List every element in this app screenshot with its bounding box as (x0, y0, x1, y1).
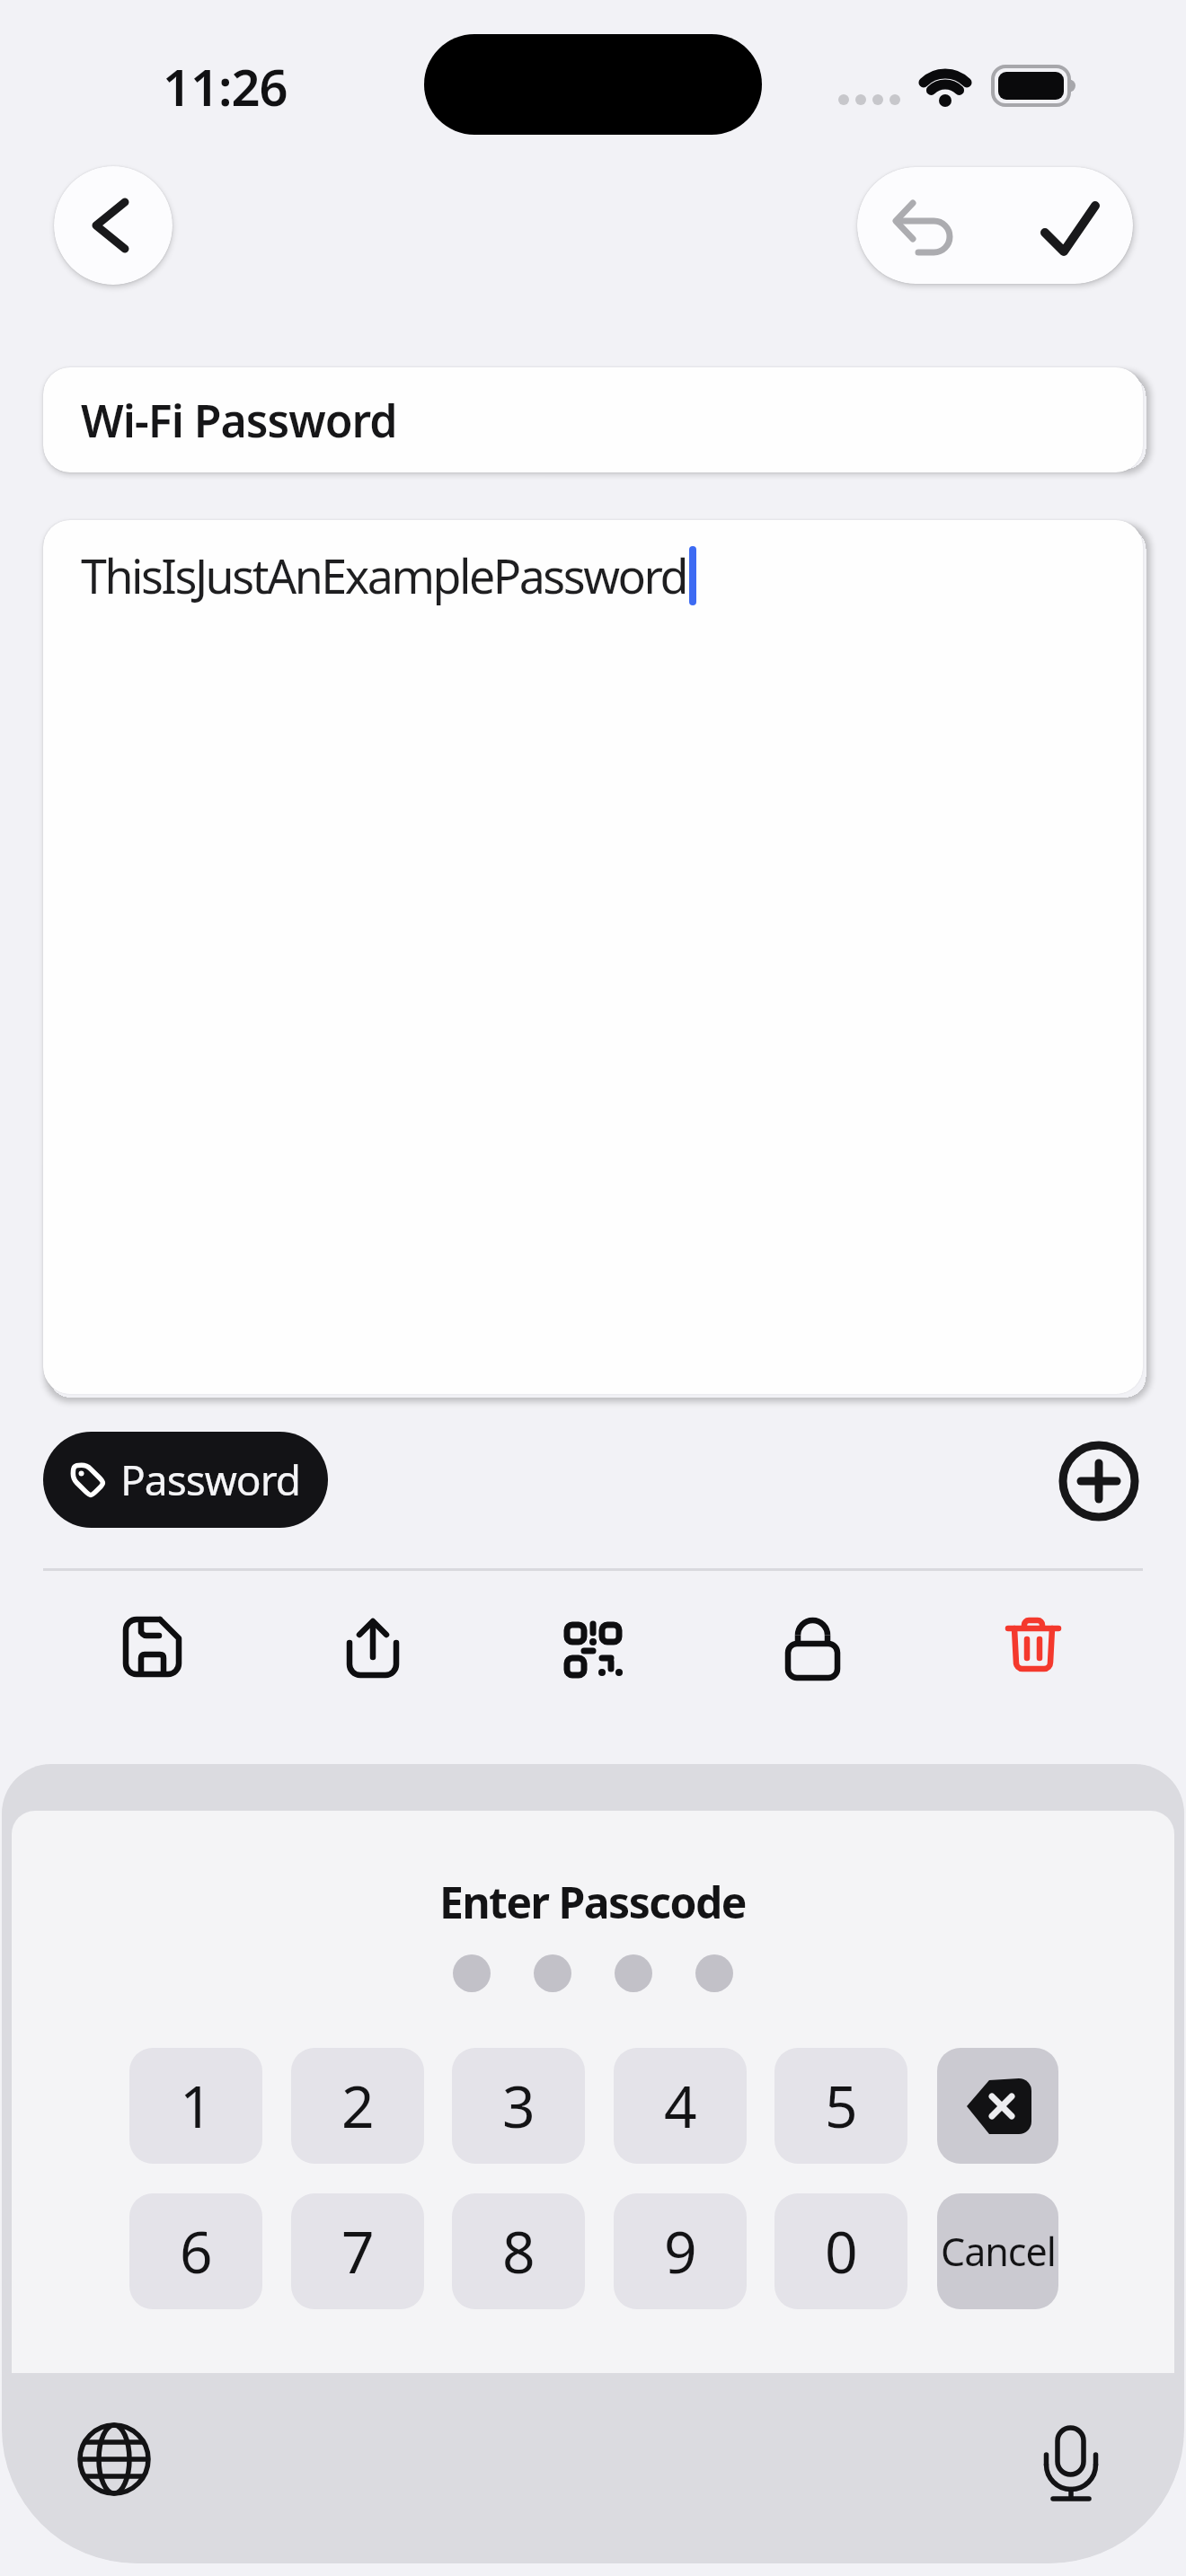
staticText: Password (120, 1451, 301, 1508)
button[interactable]: 2 (291, 2048, 424, 2164)
button[interactable]: 7 (291, 2193, 424, 2309)
staticText: 7 (341, 2212, 375, 2290)
staticText: 3 (502, 2067, 535, 2145)
button[interactable] (995, 167, 1133, 284)
button[interactable]: 4 (614, 2048, 747, 2164)
button[interactable]: 9 (614, 2193, 747, 2309)
staticText: 11:26 (163, 52, 288, 120)
button[interactable] (712, 1608, 949, 1690)
button[interactable] (54, 166, 173, 285)
button[interactable]: ThisIsJustAnExamplePassword (43, 520, 1143, 1394)
button[interactable] (237, 1608, 474, 1690)
staticText: 2 (341, 2067, 375, 2145)
button[interactable] (474, 1608, 712, 1690)
button[interactable]: 5 (774, 2048, 907, 2164)
button[interactable]: 3 (452, 2048, 585, 2164)
staticText: Enter Passcode (439, 1873, 747, 1930)
button[interactable] (1059, 1442, 1138, 1521)
staticText: 1 (180, 2067, 213, 2145)
staticText: 8 (502, 2212, 535, 2290)
button[interactable] (857, 167, 995, 284)
button[interactable]: 0 (774, 2193, 907, 2309)
button[interactable]: 6 (129, 2193, 262, 2309)
button[interactable] (949, 1608, 1186, 1690)
button[interactable] (937, 2048, 1058, 2164)
staticText: 9 (664, 2212, 697, 2290)
staticText: ThisIsJustAnExamplePassword (81, 543, 686, 607)
staticText: 6 (180, 2212, 213, 2290)
button[interactable] (0, 1608, 237, 1690)
button[interactable]: 8 (452, 2193, 585, 2309)
button[interactable]: Password (43, 1432, 328, 1528)
button[interactable]: Cancel (937, 2193, 1058, 2309)
staticText: 4 (664, 2067, 697, 2145)
staticText: Wi-Fi Password (81, 390, 397, 451)
button[interactable] (1031, 2420, 1111, 2504)
button[interactable]: Wi-Fi Password (43, 367, 1143, 472)
staticText: 0 (825, 2212, 858, 2290)
button[interactable] (75, 2420, 154, 2499)
staticText: 5 (825, 2067, 858, 2145)
button[interactable]: 1 (129, 2048, 262, 2164)
staticText: Cancel (941, 2225, 1056, 2278)
